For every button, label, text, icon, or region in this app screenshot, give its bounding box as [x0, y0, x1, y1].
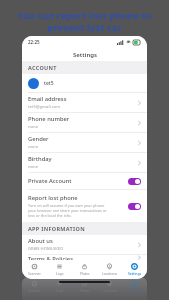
- staticText: APP INFORMATION: [28, 225, 85, 232]
- button[interactable]: Locations: [97, 260, 122, 279]
- button[interactable]: Toggle: [128, 203, 141, 210]
- staticText: Scanner: [28, 271, 41, 276]
- staticText: Turn on will assume if you own your phon…: [28, 203, 107, 218]
- staticText: Private Account: [28, 177, 72, 185]
- button[interactable]: Settings: [122, 260, 147, 279]
- staticText: Locations: [102, 271, 118, 276]
- staticText: Settings: [73, 51, 97, 59]
- staticText: Settings: [128, 271, 142, 276]
- staticText: Gender: [28, 135, 49, 143]
- staticText: Scanner: [28, 288, 41, 293]
- staticText: Report lost phone: [28, 194, 78, 202]
- staticText: Settings: [128, 288, 142, 293]
- button[interactable]: Plates: [72, 260, 97, 279]
- button[interactable]: Birthday: [22, 153, 147, 173]
- staticText: Plates: [80, 288, 90, 293]
- staticText: GRAN HOMLSKED: [28, 246, 64, 252]
- button[interactable]: Logs: [47, 277, 72, 295]
- staticText: Logs: [56, 271, 64, 276]
- button[interactable]: About us: [22, 235, 147, 255]
- staticText: tet5@gmail.com: [28, 104, 61, 110]
- button[interactable]: Settings: [122, 277, 147, 295]
- button[interactable]: Gender: [22, 133, 147, 153]
- button[interactable]: tet5: [22, 74, 147, 93]
- staticText: Terms & Policies: [28, 255, 73, 260]
- button[interactable]: Toggle: [128, 178, 141, 185]
- staticText: tet5: [44, 80, 54, 87]
- staticText: About us: [28, 237, 53, 245]
- button[interactable]: Plates: [72, 277, 97, 295]
- staticText: ACCOUNT: [28, 64, 57, 71]
- button[interactable]: Logs: [47, 260, 72, 279]
- staticText: You can report lost phone to prevent los…: [17, 9, 152, 34]
- staticText: Email address: [28, 95, 67, 103]
- button[interactable]: Report lost phone: [22, 190, 147, 222]
- button[interactable]: Phone number: [22, 113, 147, 133]
- staticText: none: [28, 144, 39, 150]
- button[interactable]: Private Account: [22, 173, 147, 190]
- staticText: Locations: [102, 288, 118, 293]
- button[interactable]: Scanner: [22, 260, 47, 279]
- staticText: Plates: [80, 271, 90, 276]
- button[interactable]: Scanner: [22, 277, 47, 295]
- button[interactable]: Terms & Policies: [22, 255, 147, 260]
- staticText: Phone number: [28, 115, 70, 123]
- staticText: none: [28, 164, 39, 170]
- button[interactable]: Email address: [22, 93, 147, 113]
- staticText: Logs: [56, 288, 64, 293]
- staticText: 22:25: [28, 39, 40, 45]
- button[interactable]: Locations: [97, 277, 122, 295]
- staticText: none: [28, 124, 39, 130]
- staticText: Birthday: [28, 155, 52, 163]
